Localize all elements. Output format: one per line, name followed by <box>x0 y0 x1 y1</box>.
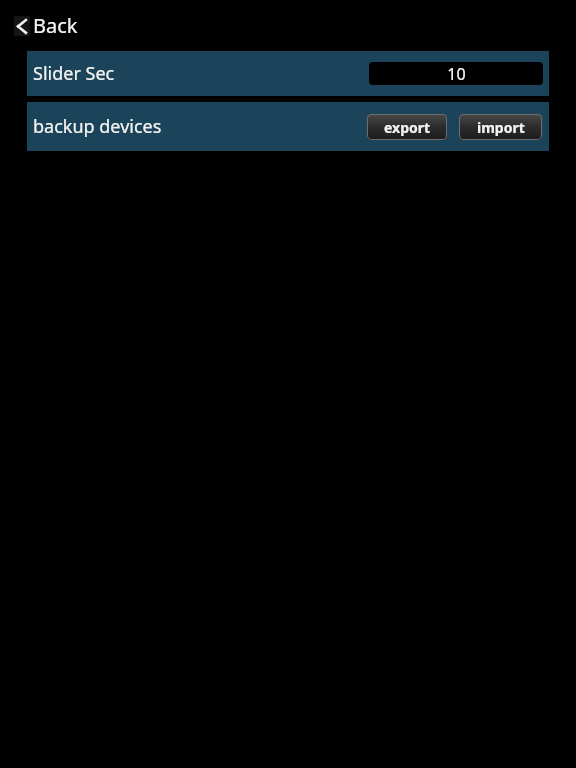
button[interactable]: Back <box>12 9 80 42</box>
staticText: 10 <box>447 63 466 85</box>
button[interactable]: 10 <box>369 62 543 85</box>
button[interactable]: export <box>367 114 447 140</box>
staticText: Slider Sec <box>33 61 115 86</box>
staticText: export <box>384 118 431 137</box>
button[interactable]: Slider Sec <box>27 51 549 96</box>
staticText: backup devices <box>33 114 162 139</box>
button[interactable]: import <box>459 114 542 140</box>
staticText: Back <box>33 12 78 39</box>
staticText: import <box>477 118 525 137</box>
